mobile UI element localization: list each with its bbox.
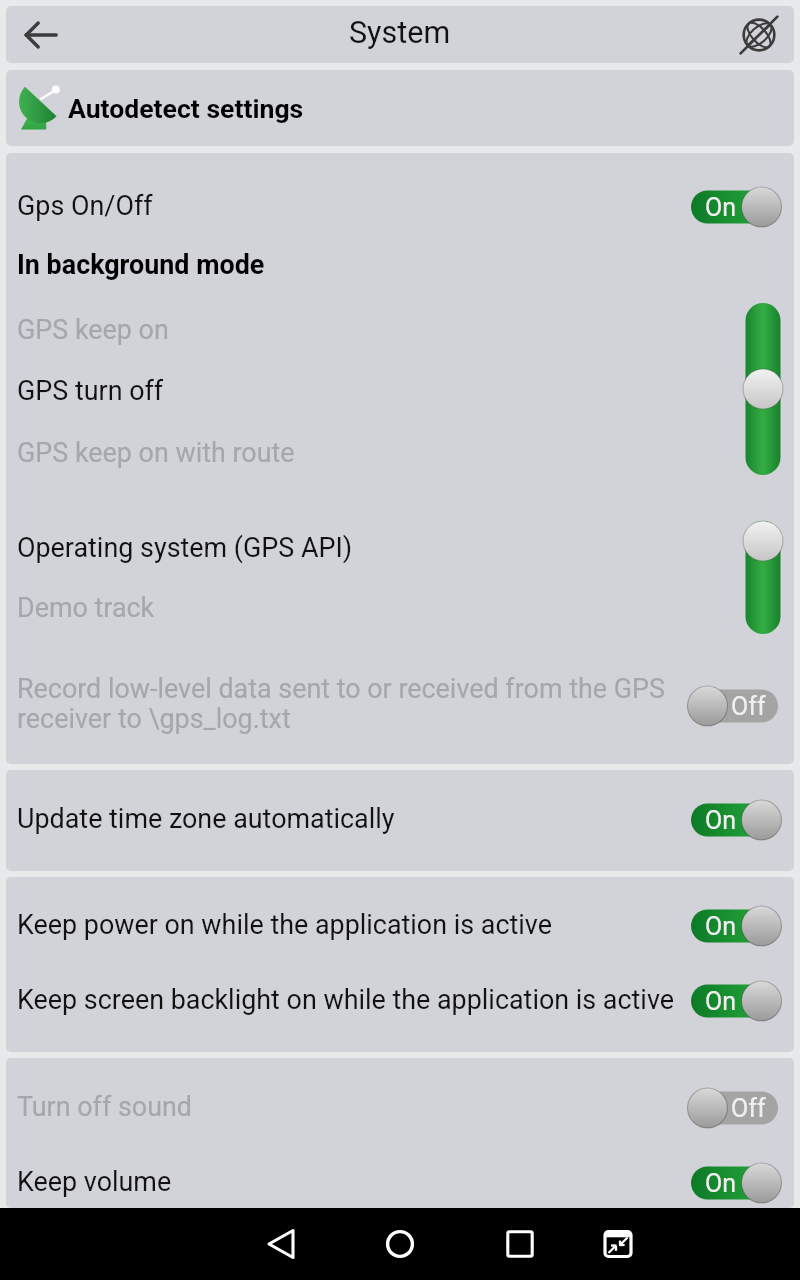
staticText: On <box>705 912 737 941</box>
button[interactable]: Record low-level data sent to or receive… <box>6 666 794 742</box>
button[interactable]: Recent apps <box>480 1208 560 1280</box>
button[interactable]: Keep power on while the application is a… <box>6 894 794 955</box>
button[interactable]: Back <box>6 6 76 63</box>
staticText: Gps On/Off <box>17 190 153 222</box>
staticText: Operating system (GPS API) <box>17 532 353 564</box>
staticText: On <box>705 806 737 835</box>
staticText: GPS turn off <box>17 375 164 407</box>
staticText: Off <box>731 1094 766 1123</box>
button[interactable]: Shrink screen <box>578 1208 658 1280</box>
staticText: Demo track <box>17 592 155 624</box>
button[interactable]: Keep screen backlight on while the appli… <box>6 969 794 1030</box>
staticText: On <box>705 987 737 1016</box>
staticText: Keep screen backlight on while the appli… <box>17 984 675 1016</box>
staticText: Autodetect settings <box>68 93 304 124</box>
staticText: Off <box>731 692 766 721</box>
button[interactable]: GPS turn off <box>6 360 794 421</box>
button[interactable]: GPS keep on with route <box>6 422 794 483</box>
staticText: On <box>705 1169 737 1198</box>
button[interactable]: Autodetect settings <box>6 70 794 146</box>
staticText: System <box>349 15 451 51</box>
staticText: Turn off sound <box>17 1091 193 1123</box>
staticText: Keep volume <box>17 1166 172 1198</box>
staticText: Keep power on while the application is a… <box>17 909 552 941</box>
button[interactable]: No internet <box>724 6 794 63</box>
button[interactable]: Update time zone automatically <box>6 788 794 849</box>
staticText: GPS keep on <box>17 314 169 346</box>
button[interactable]: Turn off sound <box>6 1076 794 1137</box>
staticText: GPS keep on with route <box>17 437 295 469</box>
button[interactable]: Home <box>360 1208 440 1280</box>
button[interactable]: Back <box>241 1208 321 1280</box>
button[interactable]: Demo track <box>6 577 794 638</box>
staticText: In background mode <box>17 249 265 281</box>
button[interactable] <box>6 175 794 236</box>
button[interactable]: GPS keep on <box>6 299 794 360</box>
button[interactable]: Keep volume <box>6 1151 794 1208</box>
staticText: Update time zone automatically <box>17 803 395 835</box>
staticText: On <box>705 193 737 222</box>
button[interactable]: Operating system (GPS API) <box>6 517 794 578</box>
staticText: Record low-level data sent to or receive… <box>17 673 677 735</box>
